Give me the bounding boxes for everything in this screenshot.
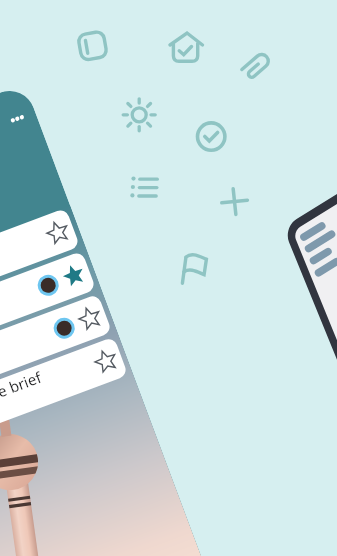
- staticText: Please check the brief: [0, 367, 45, 439]
